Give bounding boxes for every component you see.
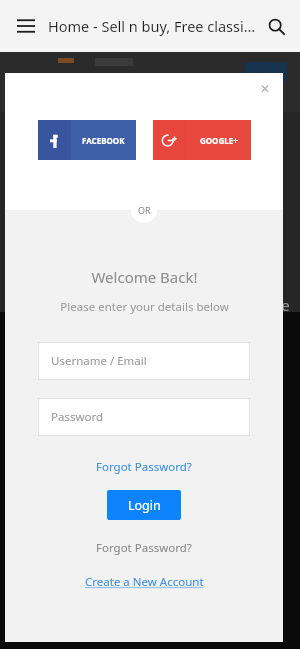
staticText: FACEBOOK (82, 135, 125, 146)
button[interactable]: Close (254, 78, 276, 100)
staticText: Login (128, 497, 161, 514)
button[interactable]: Username / Email (38, 342, 250, 380)
button[interactable]: Sign in with Google Plus (153, 120, 251, 160)
staticText: GOOGLE+ (200, 135, 238, 146)
staticText: Forgot Password? (96, 540, 192, 556)
staticText: Username / Email (51, 353, 147, 369)
staticText: Please enter your details below (60, 299, 229, 315)
staticText: ✕ (260, 82, 271, 96)
staticText: Home - Sell n buy, Free classi… (48, 16, 256, 36)
button[interactable]: Login (107, 490, 181, 520)
staticText: Forgot Password? (96, 459, 192, 475)
button[interactable]: Forgot Password? (90, 538, 198, 558)
staticText: ne (272, 295, 290, 315)
button[interactable]: Password (38, 398, 250, 436)
staticText: Create a New Account (85, 574, 204, 590)
button[interactable]: Open navigation menu (10, 10, 42, 42)
button[interactable]: Create a New Account (79, 572, 210, 592)
staticText: Password (51, 409, 104, 425)
button[interactable]: Forgot Password? (90, 457, 198, 477)
staticText: Welcome Back! (91, 267, 198, 287)
button[interactable]: Sign in with Facebook (38, 120, 136, 160)
staticText: OR (138, 204, 151, 216)
button[interactable]: Search (260, 10, 292, 42)
